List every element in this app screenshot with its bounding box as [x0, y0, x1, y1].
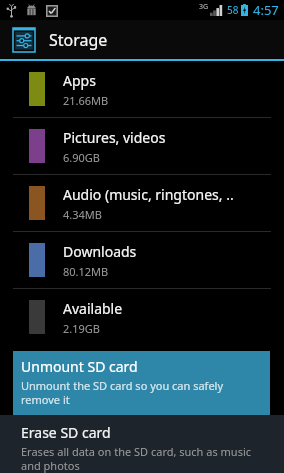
staticText: 4.34MB	[63, 207, 102, 222]
staticText: 4:57	[253, 1, 279, 19]
staticText: Apps	[63, 71, 96, 90]
staticText: Erase SD card	[21, 423, 111, 442]
staticText: Pictures, videos	[63, 128, 166, 147]
staticText: 3G	[199, 2, 209, 12]
staticText: Downloads	[63, 242, 137, 261]
button[interactable]: Available	[0, 289, 284, 345]
staticText: Erases all data on the SD card, such as …	[21, 444, 270, 473]
staticText: 21.66MB	[63, 93, 109, 108]
staticText: 80.12MB	[63, 264, 109, 279]
staticText: 6.90GB	[63, 150, 100, 165]
staticText: Storage	[49, 29, 108, 51]
staticText: Audio (music, ringtones, ..	[63, 185, 234, 204]
button[interactable]: Erase SD card	[0, 415, 284, 473]
button[interactable]: Apps	[0, 61, 284, 117]
staticText: Available	[63, 299, 123, 318]
button[interactable]: Downloads	[0, 232, 284, 288]
button[interactable]: Storage	[0, 20, 284, 59]
staticText: Unmount SD card	[21, 357, 138, 376]
staticText: 58	[227, 3, 239, 17]
staticText: Unmount the SD card so you can safely re…	[21, 378, 262, 407]
button[interactable]: Unmount SD card	[13, 351, 270, 415]
button[interactable]: Pictures, videos	[0, 118, 284, 174]
staticText: 2.19GB	[63, 321, 100, 336]
button[interactable]: Audio (music, ringtones, ..	[0, 175, 284, 231]
